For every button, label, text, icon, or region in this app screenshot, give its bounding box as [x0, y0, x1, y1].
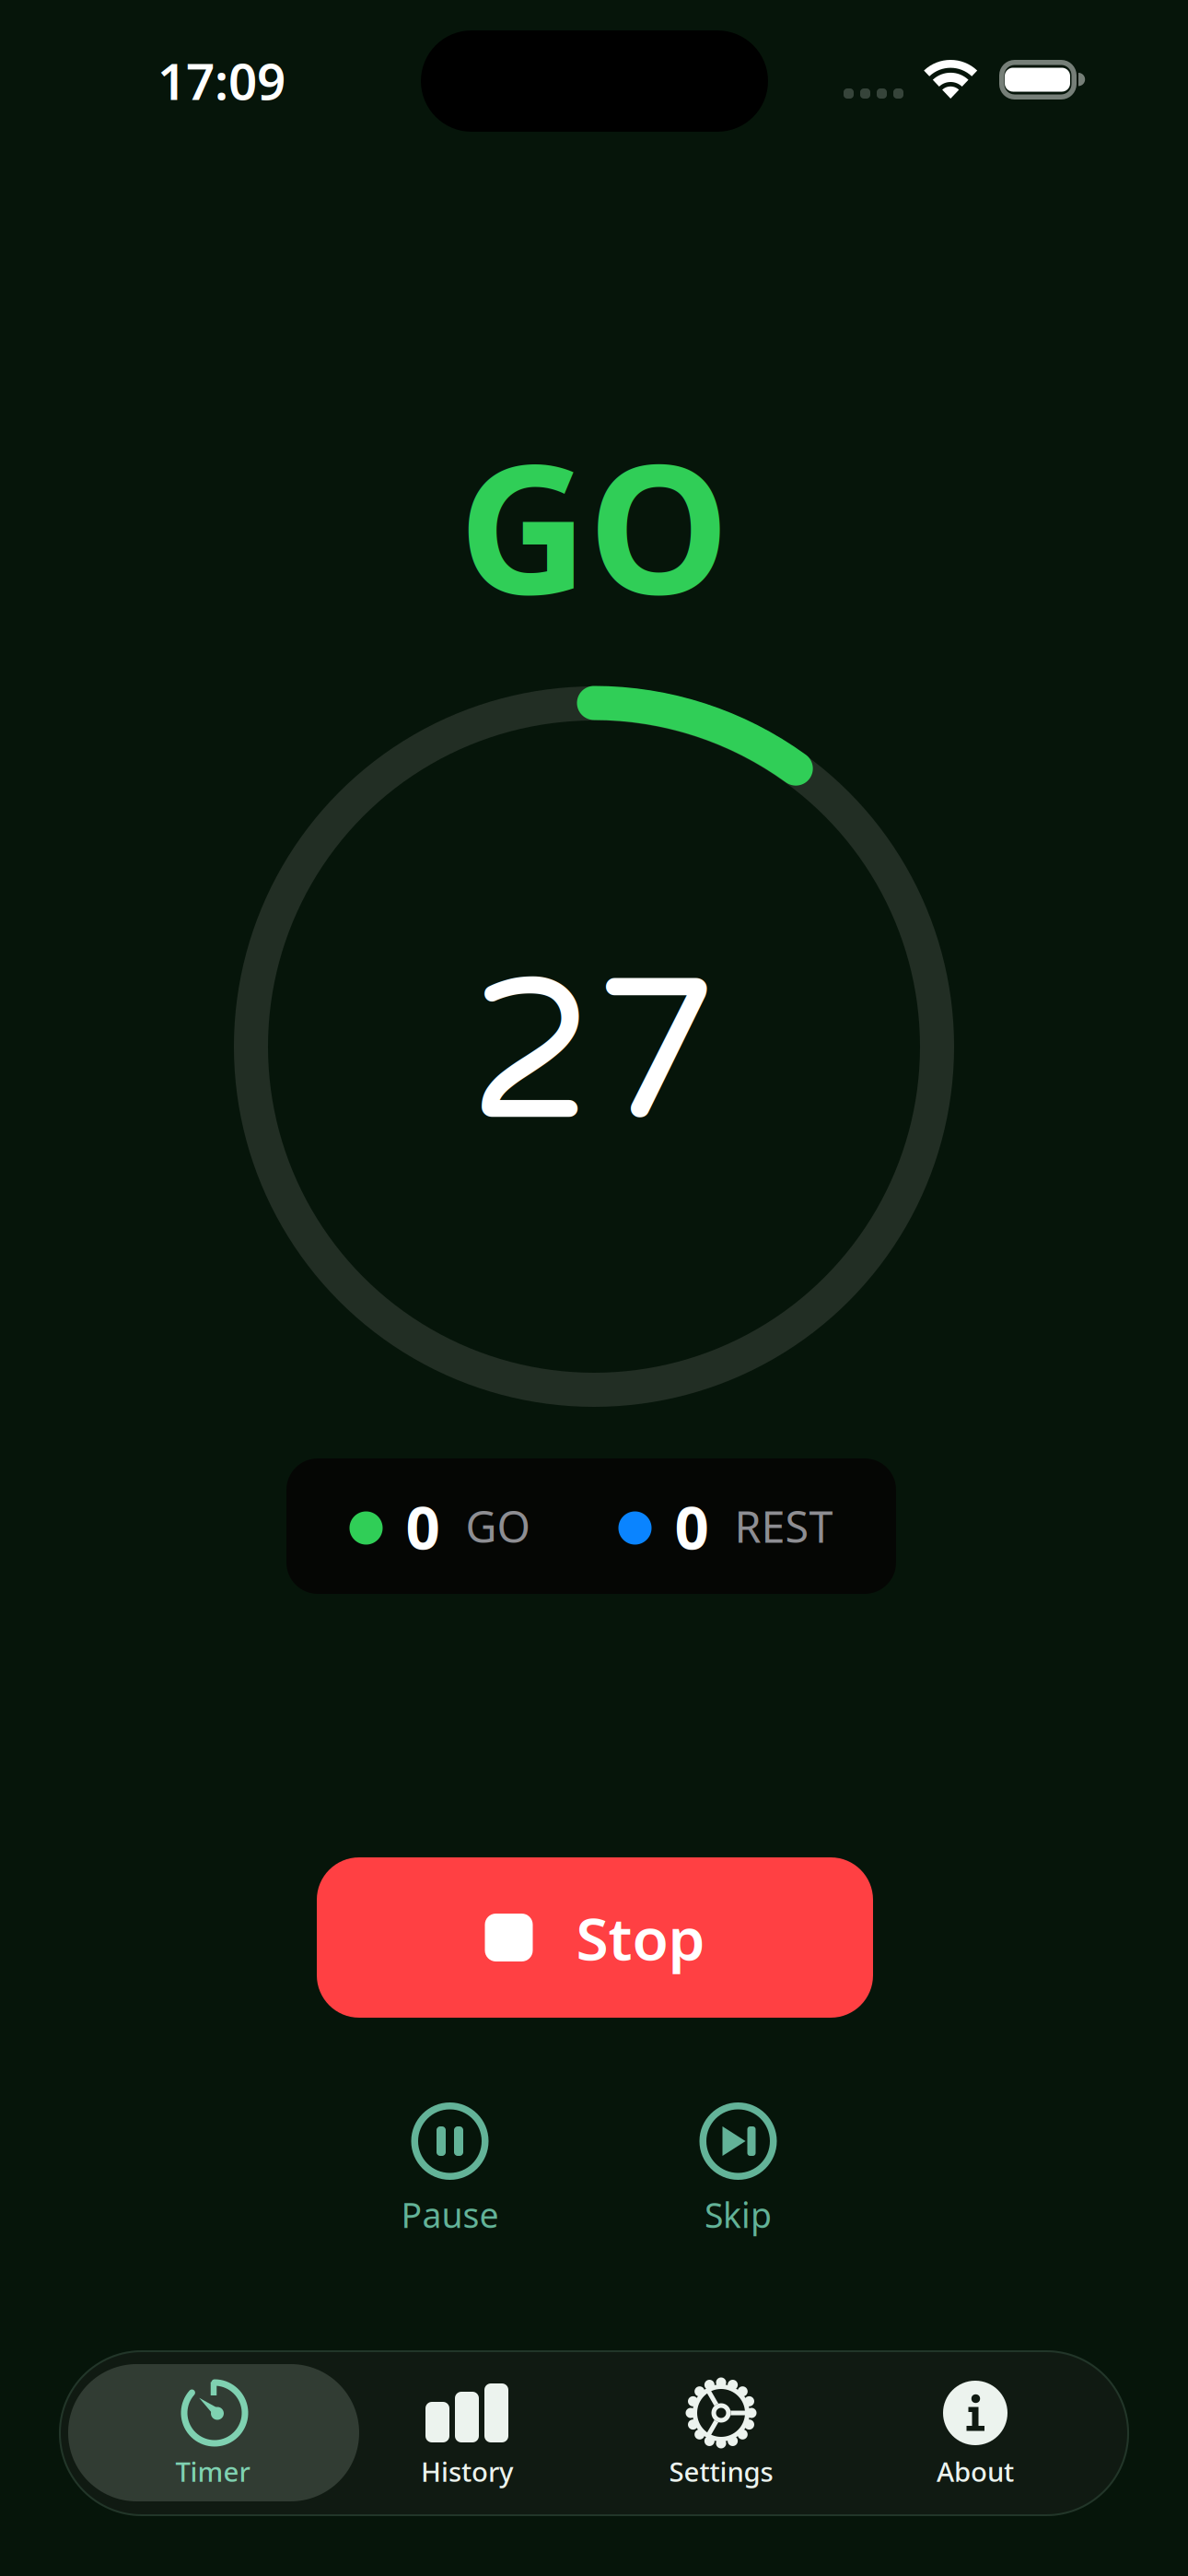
staticText: 27 — [469, 934, 719, 1174]
staticText: REST — [734, 1498, 833, 1555]
staticText: About — [937, 2453, 1014, 2489]
button[interactable]: Timer — [67, 2350, 358, 2516]
staticText: Stop — [576, 1898, 705, 1977]
staticText: GO — [458, 405, 730, 643]
staticText: History — [421, 2453, 513, 2489]
staticText: Skip — [705, 2192, 772, 2238]
button[interactable]: About — [830, 2350, 1121, 2516]
staticText: Timer — [175, 2453, 250, 2489]
staticText: 0 — [675, 1486, 709, 1566]
staticText: Settings — [669, 2453, 773, 2489]
button[interactable]: Settings — [576, 2350, 867, 2516]
staticText: GO — [466, 1498, 530, 1555]
staticText: 17:09 — [157, 47, 285, 114]
staticText: 0 — [406, 1486, 440, 1566]
button[interactable]: Skip — [637, 2102, 839, 2238]
staticText: Pause — [401, 2192, 499, 2238]
button[interactable]: Stop — [317, 1857, 873, 2018]
button[interactable]: History — [321, 2350, 612, 2516]
button[interactable]: Pause — [349, 2102, 551, 2238]
